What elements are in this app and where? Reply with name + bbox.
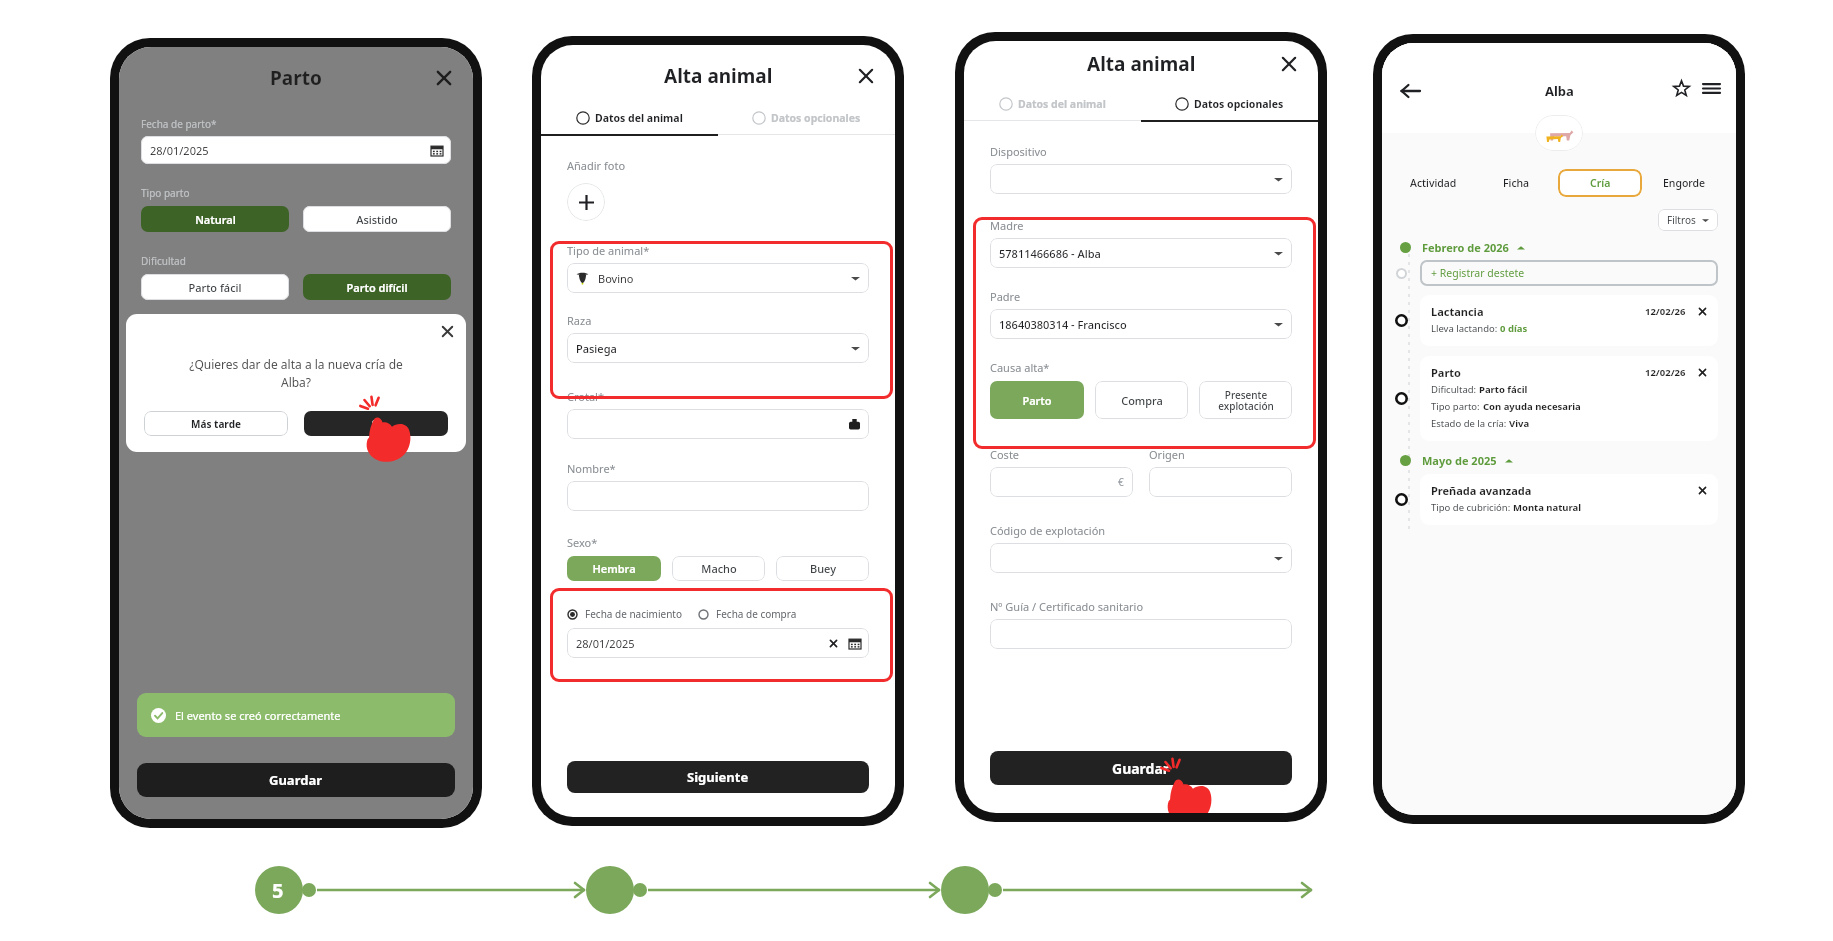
staticText: El evento se creó correctamente [175, 708, 341, 723]
staticText: Parto difícil [346, 280, 408, 295]
button[interactable]: 28/01/2025 [141, 136, 451, 164]
button[interactable]: + Registrar destete [1420, 260, 1718, 286]
button[interactable]: Preñada avanzada [1420, 474, 1718, 525]
staticText: Febrero de 2026 [1422, 240, 1509, 255]
button[interactable]: Añadir foto [567, 183, 605, 221]
button[interactable]: Febrero de 2026 [1422, 240, 1525, 255]
staticText: Origen [1149, 447, 1185, 462]
button[interactable]: 18640380314 - Francisco [990, 309, 1292, 339]
staticText: 0 días [1500, 322, 1528, 335]
button[interactable]: Parto [990, 381, 1084, 419]
button[interactable]: Lactancia [1420, 295, 1718, 346]
button[interactable]: Cerrar diálogo [439, 323, 456, 340]
button[interactable]: Eliminar [1697, 485, 1708, 496]
button[interactable]: Cerrar [855, 65, 877, 87]
button[interactable]: Hembra [567, 556, 661, 581]
staticText: 5 [272, 877, 284, 904]
staticText: Filtros [1667, 213, 1696, 227]
staticText: Lleva lactando: [1431, 322, 1500, 335]
button[interactable] [567, 481, 869, 511]
button[interactable]: Natural [141, 206, 289, 232]
button[interactable]: Cerrar [1278, 53, 1300, 75]
button[interactable] [990, 619, 1292, 649]
button[interactable] [567, 409, 869, 439]
button[interactable]: Parto [1420, 356, 1718, 441]
button[interactable]: Guardar [137, 763, 455, 797]
staticText: Parto fácil [188, 280, 242, 295]
staticText: Tipo de cubrición: [1431, 501, 1513, 514]
button[interactable]: Más tarde [144, 411, 288, 436]
button[interactable]: Guardar [990, 751, 1292, 785]
staticText: Buey [810, 561, 836, 576]
staticText: Añadir foto [567, 158, 626, 173]
staticText: Guardar [1112, 759, 1170, 778]
staticText: Código de explotación [990, 523, 1106, 538]
staticText: Cría [1590, 176, 1611, 190]
button[interactable]: Bovino [567, 263, 869, 293]
staticText: Natural [195, 212, 236, 227]
staticText: Con ayuda necesaria [1483, 400, 1581, 413]
staticText: Actividad [1410, 176, 1457, 190]
button[interactable]: Compra [1095, 381, 1188, 419]
staticText: Mayo de 2025 [1422, 453, 1497, 468]
staticText: Nº Guía / Certificado sanitario [990, 599, 1144, 614]
staticText: Pasiega [576, 341, 617, 356]
button[interactable]: € [990, 467, 1133, 497]
button[interactable]: Eliminar [1697, 306, 1708, 317]
staticText: Raza [567, 313, 592, 328]
button[interactable]: 57811466686 - Alba [990, 238, 1292, 268]
button[interactable]: Sí [304, 411, 448, 436]
staticText: Alta animal [1087, 51, 1196, 77]
staticText: Nombre* [567, 461, 616, 476]
button[interactable] [1149, 467, 1292, 497]
staticText: 28/01/2025 [150, 143, 209, 158]
button[interactable]: Datos opcionales [1141, 97, 1318, 111]
button[interactable]: Datos opcionales [718, 111, 895, 125]
staticText: Datos del animal [1018, 97, 1106, 111]
button[interactable]: Menú [1703, 80, 1720, 97]
button[interactable]: Datos del animal [964, 97, 1141, 111]
button[interactable]: Presente explotación [1199, 381, 1292, 419]
button[interactable]: Asistido [303, 206, 451, 232]
button[interactable]: Cerrar [433, 67, 455, 89]
staticText: Compra [1121, 393, 1163, 408]
button[interactable]: Pasiega [567, 333, 869, 363]
staticText: Tipo de animal* [567, 243, 650, 258]
staticText: Datos del animal [595, 111, 683, 125]
button[interactable]: Macho [672, 556, 765, 581]
staticText: 28/01/2025 [576, 636, 635, 651]
staticText: Monta natural [1513, 501, 1582, 514]
staticText: Engorde [1663, 176, 1706, 190]
button[interactable]: Eliminar [1697, 367, 1708, 378]
staticText: Causa alta* [990, 360, 1050, 375]
button[interactable]: Favorito [1673, 80, 1690, 97]
staticText: Hembra [592, 561, 636, 576]
button[interactable]: Datos del animal [541, 111, 718, 125]
staticText: Parto [1022, 393, 1052, 408]
button[interactable]: Mayo de 2025 [1422, 453, 1513, 468]
button[interactable]: Engorde [1642, 169, 1726, 197]
staticText: ¿Quieres dar de alta a la nueva cría de … [189, 356, 403, 391]
button[interactable]: Siguiente [567, 761, 869, 793]
button[interactable]: Buey [776, 556, 869, 581]
staticText: Siguiente [687, 768, 749, 786]
staticText: Coste [990, 447, 1020, 462]
button[interactable]: Atrás [1400, 81, 1420, 101]
button[interactable]: 28/01/2025 [567, 628, 869, 658]
staticText: Parto fácil [1479, 383, 1528, 396]
button[interactable]: Parto difícil [303, 274, 451, 300]
staticText: Sí [372, 417, 381, 431]
staticText: Preñada avanzada [1431, 483, 1697, 498]
button[interactable] [990, 164, 1292, 194]
button[interactable]: Actividad [1392, 169, 1475, 197]
staticText: 57811466686 - Alba [999, 246, 1101, 261]
button[interactable]: Parto fácil [141, 274, 289, 300]
staticText: 18640380314 - Francisco [999, 317, 1127, 332]
button[interactable]: Cría [1558, 169, 1642, 197]
button[interactable]: Filtros [1667, 209, 1709, 231]
staticText: Padre [990, 289, 1021, 304]
staticText: Lactancia [1431, 304, 1645, 319]
staticText: Asistido [356, 212, 398, 227]
button[interactable] [990, 543, 1292, 573]
button[interactable]: Ficha [1475, 169, 1558, 197]
